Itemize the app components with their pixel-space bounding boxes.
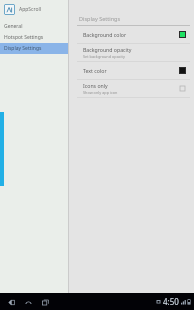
staticText: Background color <box>83 31 127 38</box>
staticText: Text color <box>83 67 107 74</box>
button[interactable]: Hotspot Settings <box>0 32 68 43</box>
button[interactable]: Display Settings <box>0 43 68 54</box>
button[interactable]: Icons only toggle <box>179 85 186 92</box>
button[interactable]: Icons only <box>69 80 194 97</box>
button[interactable]: Back <box>5 295 18 309</box>
staticText: AppScroll <box>19 6 42 13</box>
button[interactable]: General <box>0 21 68 32</box>
staticText: Set background opacity <box>83 54 125 59</box>
staticText: Show only app icon <box>83 90 118 95</box>
staticText: Display Settings <box>79 15 121 22</box>
button[interactable]: AppScroll <box>0 0 68 18</box>
staticText: Background opacity <box>83 46 132 53</box>
staticText: Display Settings <box>4 45 42 52</box>
button[interactable]: Recent apps <box>39 295 52 309</box>
button[interactable]: Text color <box>69 62 194 79</box>
staticText: Icons only <box>83 82 108 89</box>
button[interactable]: Background opacity <box>69 44 194 61</box>
staticText: Hotspot Settings <box>4 34 44 41</box>
staticText: 4:50 <box>163 296 179 307</box>
button[interactable]: Home <box>22 295 35 309</box>
button[interactable]: Background color <box>69 26 194 43</box>
staticText: General <box>4 23 23 30</box>
button[interactable]: 4:50 <box>156 293 194 310</box>
